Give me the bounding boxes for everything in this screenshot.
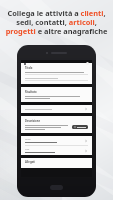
button[interactable]: Titolo <box>21 63 92 84</box>
button[interactable]: Allegati <box>21 158 92 168</box>
button[interactable]: Risultato <box>21 87 92 102</box>
staticText: Collega le attività a clienti, sedi, con… <box>5 8 108 37</box>
staticText: Risultato <box>25 90 37 94</box>
button[interactable]: Open <box>84 139 88 143</box>
button[interactable]: Open <box>21 105 92 113</box>
staticText: Inizio <box>25 138 31 141</box>
button[interactable]: Descrizione <box>21 116 92 133</box>
button[interactable]: Open <box>84 107 88 111</box>
staticText: Fine <box>25 148 30 151</box>
button[interactable]: Azione <box>72 125 88 129</box>
button[interactable]: Open <box>84 149 88 153</box>
other: Front camera <box>86 62 89 65</box>
staticText: Allegati <box>25 160 35 164</box>
staticText: Descrizione <box>25 119 40 123</box>
staticText: Titolo <box>25 66 33 70</box>
button[interactable]: Inizio <box>21 136 92 155</box>
